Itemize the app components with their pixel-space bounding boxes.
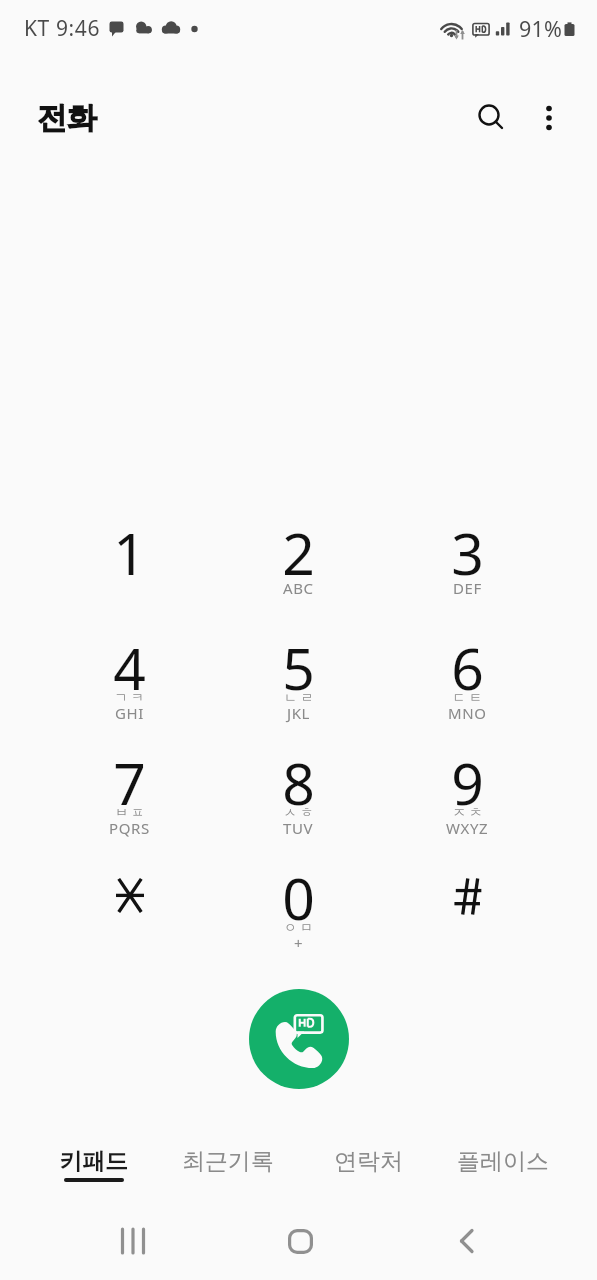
- staticText: 5: [282, 629, 315, 707]
- button[interactable]: 8: [214, 736, 383, 851]
- button[interactable]: 1: [45, 506, 214, 621]
- staticText: WXYZ: [446, 818, 489, 838]
- button[interactable]: 5: [214, 621, 383, 736]
- button[interactable]: 3: [383, 506, 552, 621]
- button[interactable]: 2: [214, 506, 383, 621]
- staticText: 0: [282, 859, 315, 937]
- button[interactable]: Star: [45, 851, 214, 966]
- staticText: 9: [451, 744, 484, 822]
- staticText: PQRS: [109, 818, 150, 838]
- staticText: KT 9:46: [24, 14, 100, 43]
- staticText: 2: [282, 514, 315, 592]
- staticText: ㄷㅌ: [451, 689, 484, 705]
- staticText: MNO: [448, 703, 487, 723]
- staticText: 3: [451, 514, 484, 592]
- button[interactable]: Recents: [97, 1205, 169, 1277]
- staticText: ㄴㄹ: [282, 689, 315, 705]
- staticText: ㅈㅊ: [451, 804, 484, 820]
- staticText: DEF: [453, 578, 482, 598]
- staticText: 6: [451, 629, 484, 707]
- button[interactable]: Search: [467, 94, 515, 142]
- button[interactable]: Pound: [383, 851, 552, 966]
- button[interactable]: 4: [45, 621, 214, 736]
- staticText: 최근기록: [182, 1147, 274, 1176]
- button[interactable]: More options: [525, 94, 573, 142]
- staticText: ㅅㅎ: [282, 804, 315, 820]
- button[interactable]: 플레이스: [435, 1136, 571, 1200]
- staticText: ㅇㅁ: [282, 919, 315, 935]
- button[interactable]: Call: [249, 989, 349, 1089]
- staticText: TUV: [283, 818, 314, 838]
- staticText: ㅂㅍ: [113, 804, 146, 820]
- staticText: 8: [282, 744, 315, 822]
- button[interactable]: 0: [214, 851, 383, 966]
- button[interactable]: 연락처: [306, 1136, 430, 1200]
- staticText: +: [294, 933, 304, 953]
- staticText: 91%: [519, 14, 563, 43]
- button[interactable]: 9: [383, 736, 552, 851]
- button[interactable]: 7: [45, 736, 214, 851]
- button[interactable]: Back: [431, 1205, 503, 1277]
- button[interactable]: 6: [383, 621, 552, 736]
- staticText: 1: [113, 514, 146, 592]
- staticText: 플레이스: [457, 1147, 549, 1176]
- button[interactable]: 키패드: [31, 1136, 155, 1200]
- staticText: 7: [113, 744, 146, 822]
- button[interactable]: Home: [264, 1205, 336, 1277]
- staticText: 키패드: [59, 1147, 128, 1176]
- staticText: ABC: [283, 578, 314, 598]
- staticText: GHI: [115, 703, 144, 723]
- staticText: 연락처: [334, 1147, 403, 1176]
- staticText: ㄱㅋ: [113, 689, 146, 705]
- button[interactable]: 최근기록: [160, 1136, 296, 1200]
- staticText: JKL: [287, 703, 311, 723]
- staticText: 4: [113, 629, 146, 707]
- staticText: 전화: [37, 99, 97, 137]
